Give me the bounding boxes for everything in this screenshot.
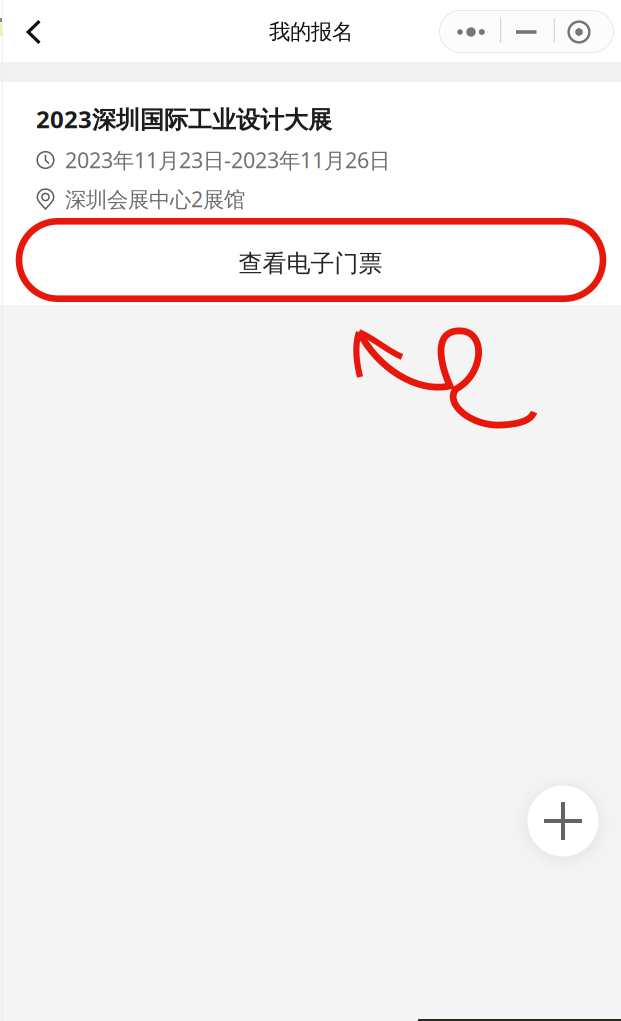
button[interactable]: More: [439, 10, 500, 52]
button[interactable]: 查看电子门票: [21, 224, 599, 302]
button[interactable]: Back: [6, 1, 62, 63]
button[interactable]: Add: [527, 785, 598, 856]
staticText: 我的报名: [269, 19, 353, 45]
button[interactable]: Close: [554, 10, 613, 52]
staticText: 2023深圳国际工业设计大展: [36, 103, 332, 135]
staticText: 深圳会展中心2展馆: [65, 185, 245, 213]
staticText: 2023年11月23日-2023年11月26日: [65, 146, 390, 174]
staticText: 查看电子门票: [238, 249, 382, 278]
button[interactable]: Minimise: [500, 10, 554, 52]
